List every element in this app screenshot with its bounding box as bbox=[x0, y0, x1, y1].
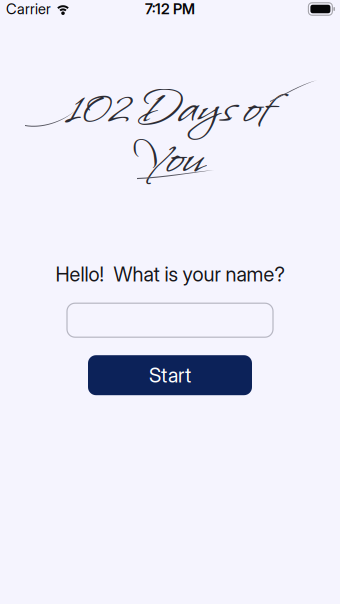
staticText: 7:12 PM bbox=[145, 0, 195, 18]
staticText: You bbox=[137, 124, 203, 192]
staticText: Carrier bbox=[6, 0, 51, 18]
staticText: Start bbox=[149, 363, 191, 387]
staticText: 102 Days of bbox=[67, 74, 273, 142]
button[interactable]: Start bbox=[88, 355, 252, 395]
staticText: Hello! What is your name? bbox=[55, 262, 284, 286]
